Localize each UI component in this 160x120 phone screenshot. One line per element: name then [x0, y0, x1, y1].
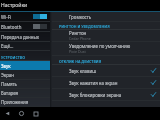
button[interactable]: Back: [2, 108, 13, 119]
staticText: Приложения: [1, 99, 29, 105]
button[interactable]: Звук: [0, 61, 50, 70]
button[interactable]: Батарея: [0, 89, 50, 97]
staticText: ОТКЛИК НА ДЕЙСТВИЯ: [59, 59, 102, 64]
button[interactable]: Приложения: [0, 98, 50, 106]
staticText: Звук нажатия на экран: [69, 80, 118, 86]
staticText: Звук: [1, 63, 11, 69]
staticText: Звук клавиш: [69, 68, 97, 74]
button[interactable]: Громкость: [52, 12, 160, 21]
button[interactable]: Bluetooth: [0, 22, 50, 31]
staticText: Экран: [1, 72, 14, 78]
staticText: Передача данных: [1, 34, 40, 40]
button[interactable]: Home: [16, 108, 27, 119]
button[interactable]: Recents: [30, 108, 41, 119]
button[interactable]: Уведомление по умолчанию: [52, 42, 160, 55]
button[interactable]: Wi-Fi: [0, 12, 50, 21]
button[interactable]: Ещё...: [0, 42, 50, 50]
button[interactable]: Память: [0, 80, 50, 88]
staticText: Настройки: [1, 2, 28, 9]
staticText: Wi-Fi: [1, 14, 12, 20]
staticText: Громкость: [69, 14, 92, 20]
staticText: УСТРОЙСТВО: [1, 55, 26, 60]
staticText: Pixie Dust: [69, 49, 86, 54]
button[interactable]: Звук нажатия на экран: [52, 77, 160, 88]
staticText: Уведомление по умолчанию: [69, 43, 131, 49]
button[interactable]: Экран: [0, 71, 50, 79]
staticText: РИНГТОН И УВЕДОМЛЕНИЯ: [59, 24, 110, 29]
staticText: Cedar Phone: [69, 36, 91, 41]
button[interactable]: Звук клавиш: [52, 65, 160, 76]
button[interactable]: Передача данных: [0, 32, 50, 41]
staticText: Ещё...: [1, 43, 14, 49]
button[interactable]: Рингтон: [52, 30, 160, 41]
staticText: Звук блокировки экрана: [69, 92, 122, 98]
staticText: Рингтон: [69, 30, 87, 36]
staticText: Батарея: [1, 90, 19, 96]
button[interactable]: Звук блокировки экрана: [52, 89, 160, 100]
staticText: Память: [1, 81, 17, 87]
staticText: Bluetooth: [1, 24, 22, 30]
